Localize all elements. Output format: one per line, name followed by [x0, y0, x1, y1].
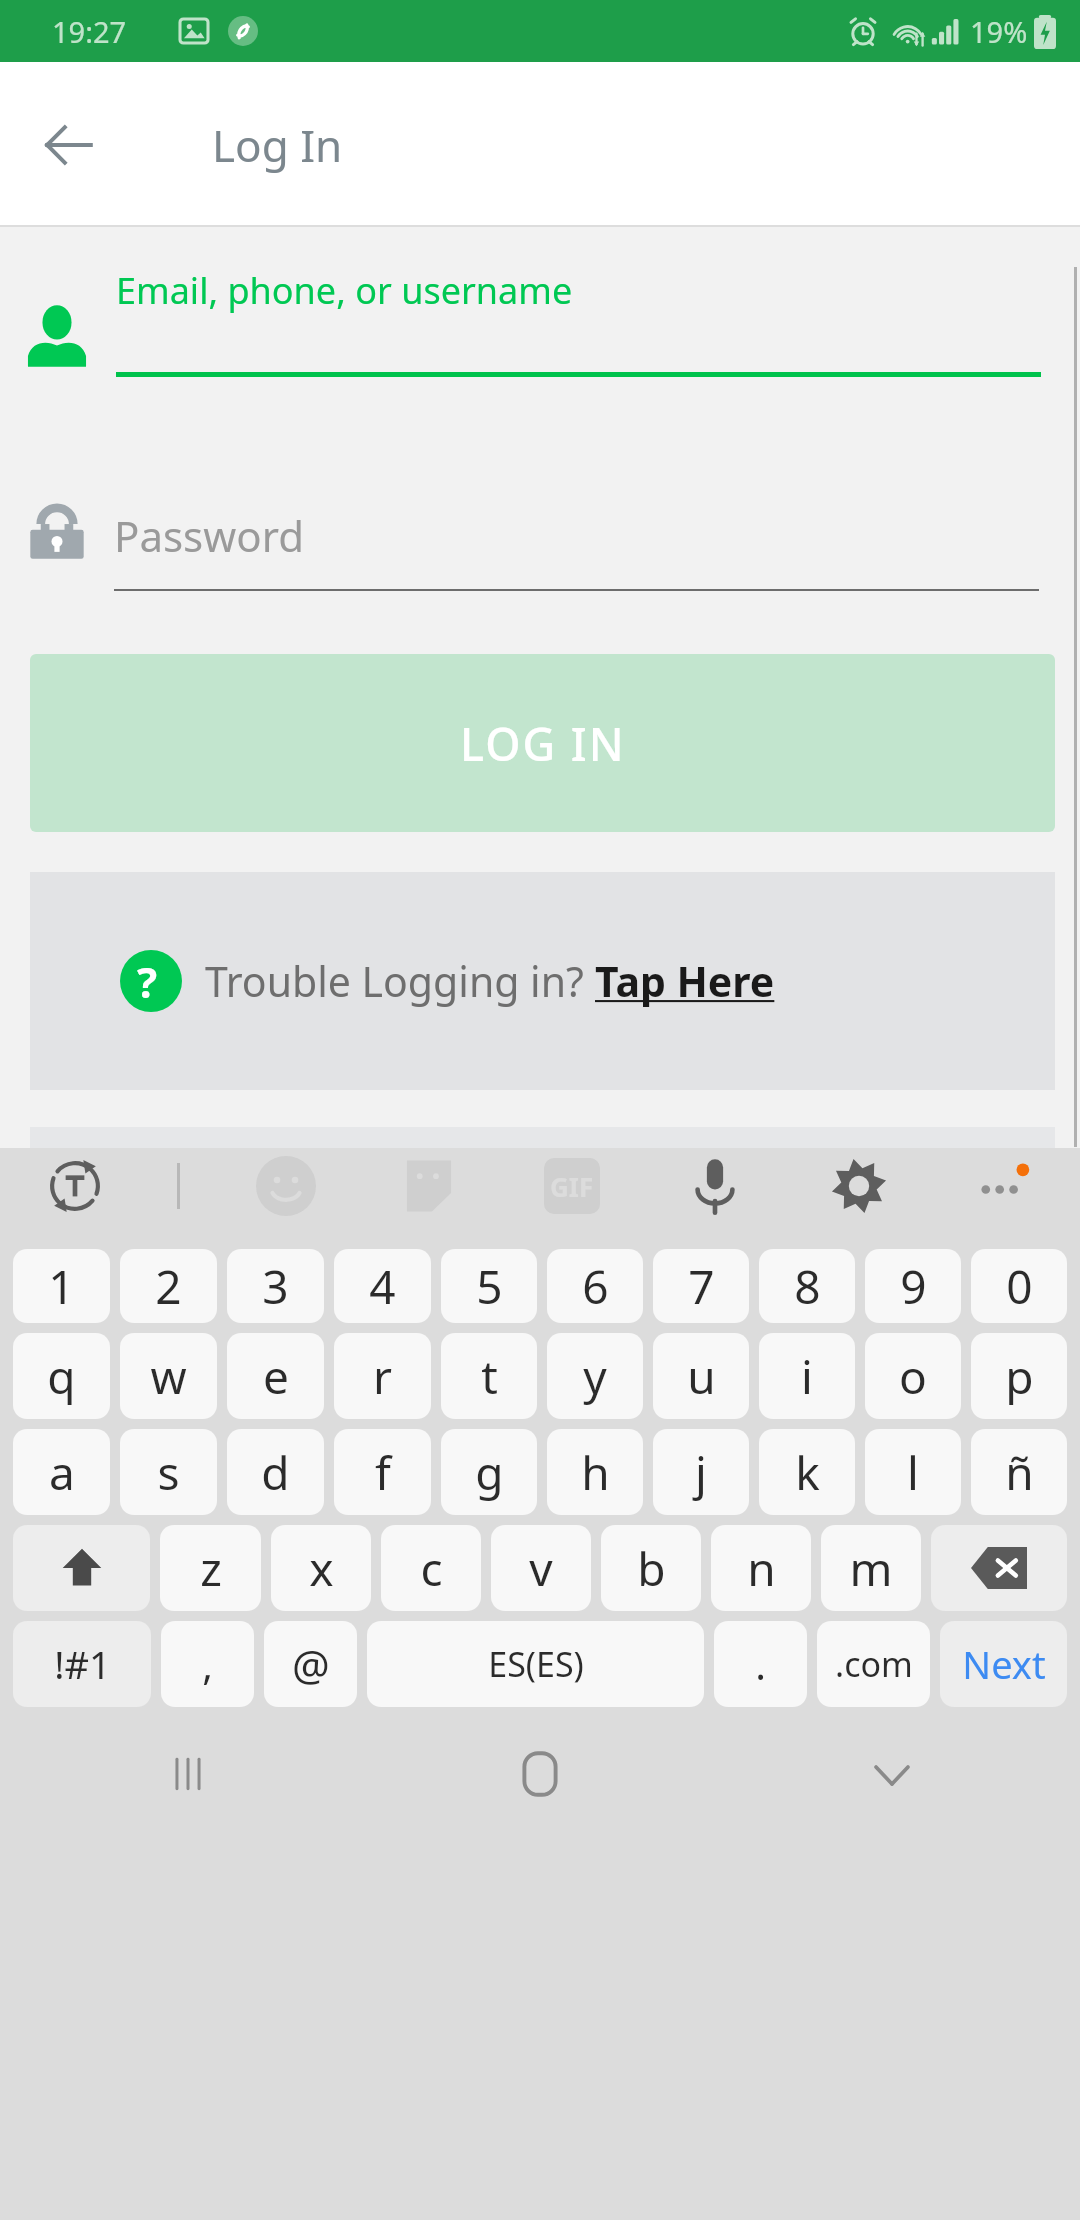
staticText: ?: [137, 953, 158, 1010]
staticText: 4: [369, 1255, 396, 1318]
staticText: Tap Here: [595, 953, 775, 1009]
button[interactable]: More options: [964, 1148, 1040, 1224]
staticText: !#1: [54, 1638, 111, 1690]
button[interactable]: Voice input: [677, 1148, 753, 1224]
staticText: q: [47, 1345, 76, 1408]
button[interactable]: .com: [817, 1621, 930, 1707]
button[interactable]: c: [381, 1525, 481, 1611]
button[interactable]: Keyboard settings: [821, 1148, 897, 1224]
button[interactable]: 0: [971, 1249, 1067, 1323]
button[interactable]: m: [821, 1525, 921, 1611]
staticText: v: [529, 1537, 553, 1600]
button[interactable]: s: [120, 1429, 217, 1515]
staticText: n: [747, 1537, 776, 1600]
button[interactable]: 4: [334, 1249, 431, 1323]
staticText: o: [899, 1345, 927, 1408]
button[interactable]: d: [227, 1429, 324, 1515]
staticText: z: [200, 1537, 222, 1600]
staticText: k: [795, 1441, 820, 1504]
staticText: c: [420, 1537, 443, 1600]
button[interactable]: g: [441, 1429, 537, 1515]
button[interactable]: GIF: [534, 1148, 610, 1224]
button[interactable]: Stickers: [391, 1148, 467, 1224]
staticText: f: [375, 1441, 391, 1504]
staticText: u: [687, 1345, 716, 1408]
button[interactable]: ,: [161, 1621, 254, 1707]
staticText: ñ: [1005, 1441, 1034, 1504]
button[interactable]: !#1: [13, 1621, 151, 1707]
staticText: Email, phone, or username: [116, 266, 573, 315]
button[interactable]: 9: [865, 1249, 961, 1323]
button[interactable]: Back: [30, 106, 108, 184]
staticText: 1: [48, 1255, 75, 1318]
button[interactable]: 1: [13, 1249, 110, 1323]
button[interactable]: v: [491, 1525, 591, 1611]
button[interactable]: k: [759, 1429, 855, 1515]
staticText: j: [695, 1441, 707, 1504]
staticText: LOG IN: [460, 713, 626, 774]
staticText: y: [583, 1345, 607, 1408]
button[interactable]: ES(ES): [367, 1621, 704, 1707]
staticText: d: [261, 1441, 290, 1504]
button[interactable]: 7: [653, 1249, 749, 1323]
button[interactable]: [114, 495, 1039, 583]
staticText: x: [309, 1537, 334, 1600]
staticText: 0: [1006, 1255, 1033, 1318]
button[interactable]: q: [13, 1333, 110, 1419]
button[interactable]: h: [547, 1429, 643, 1515]
button[interactable]: o: [865, 1333, 961, 1419]
button[interactable]: Next: [940, 1621, 1067, 1707]
button[interactable]: f: [334, 1429, 431, 1515]
staticText: 3: [262, 1255, 289, 1318]
button[interactable]: i: [759, 1333, 855, 1419]
button[interactable]: 2: [120, 1249, 217, 1323]
staticText: 2: [155, 1255, 182, 1318]
button[interactable]: .: [714, 1621, 807, 1707]
staticText: 5: [476, 1255, 503, 1318]
button[interactable]: Backspace: [931, 1525, 1067, 1611]
button[interactable]: 8: [759, 1249, 855, 1323]
button[interactable]: j: [653, 1429, 749, 1515]
staticText: .: [755, 1637, 766, 1691]
button[interactable]: a: [13, 1429, 110, 1515]
staticText: p: [1005, 1345, 1034, 1408]
staticText: ,: [202, 1637, 213, 1691]
button[interactable]: t: [441, 1333, 537, 1419]
button[interactable]: [116, 257, 1041, 362]
button[interactable]: b: [601, 1525, 701, 1611]
staticText: t: [481, 1345, 498, 1408]
button[interactable]: x: [271, 1525, 371, 1611]
staticText: m: [849, 1537, 893, 1600]
staticText: @: [292, 1636, 330, 1693]
button[interactable]: u: [653, 1333, 749, 1419]
button[interactable]: y: [547, 1333, 643, 1419]
staticText: s: [157, 1441, 180, 1504]
button[interactable]: Translate: [40, 1151, 110, 1221]
button[interactable]: Home: [492, 1726, 588, 1822]
button[interactable]: p: [971, 1333, 1067, 1419]
button[interactable]: Shift: [13, 1525, 150, 1611]
button[interactable]: r: [334, 1333, 431, 1419]
staticText: 19:27: [52, 12, 127, 51]
button[interactable]: n: [711, 1525, 811, 1611]
staticText: 9: [900, 1255, 927, 1318]
button[interactable]: 5: [441, 1249, 537, 1323]
button[interactable]: e: [227, 1333, 324, 1419]
button[interactable]: w: [120, 1333, 217, 1419]
button[interactable]: Emoji: [248, 1148, 324, 1224]
staticText: ES(ES): [488, 1641, 584, 1687]
staticText: Trouble Logging in?: [205, 953, 595, 1009]
button[interactable]: Recents: [140, 1726, 236, 1822]
staticText: 8: [794, 1255, 821, 1318]
button[interactable]: 3: [227, 1249, 324, 1323]
staticText: Log In: [212, 115, 343, 175]
button[interactable]: z: [160, 1525, 261, 1611]
button[interactable]: @: [264, 1621, 357, 1707]
button[interactable]: 6: [547, 1249, 643, 1323]
button[interactable]: ?: [30, 872, 1055, 1090]
button[interactable]: LOG IN: [30, 654, 1055, 832]
button[interactable]: ñ: [971, 1429, 1067, 1515]
staticText: 6: [582, 1255, 609, 1318]
button[interactable]: l: [865, 1429, 961, 1515]
button[interactable]: Hide keyboard: [844, 1726, 940, 1822]
